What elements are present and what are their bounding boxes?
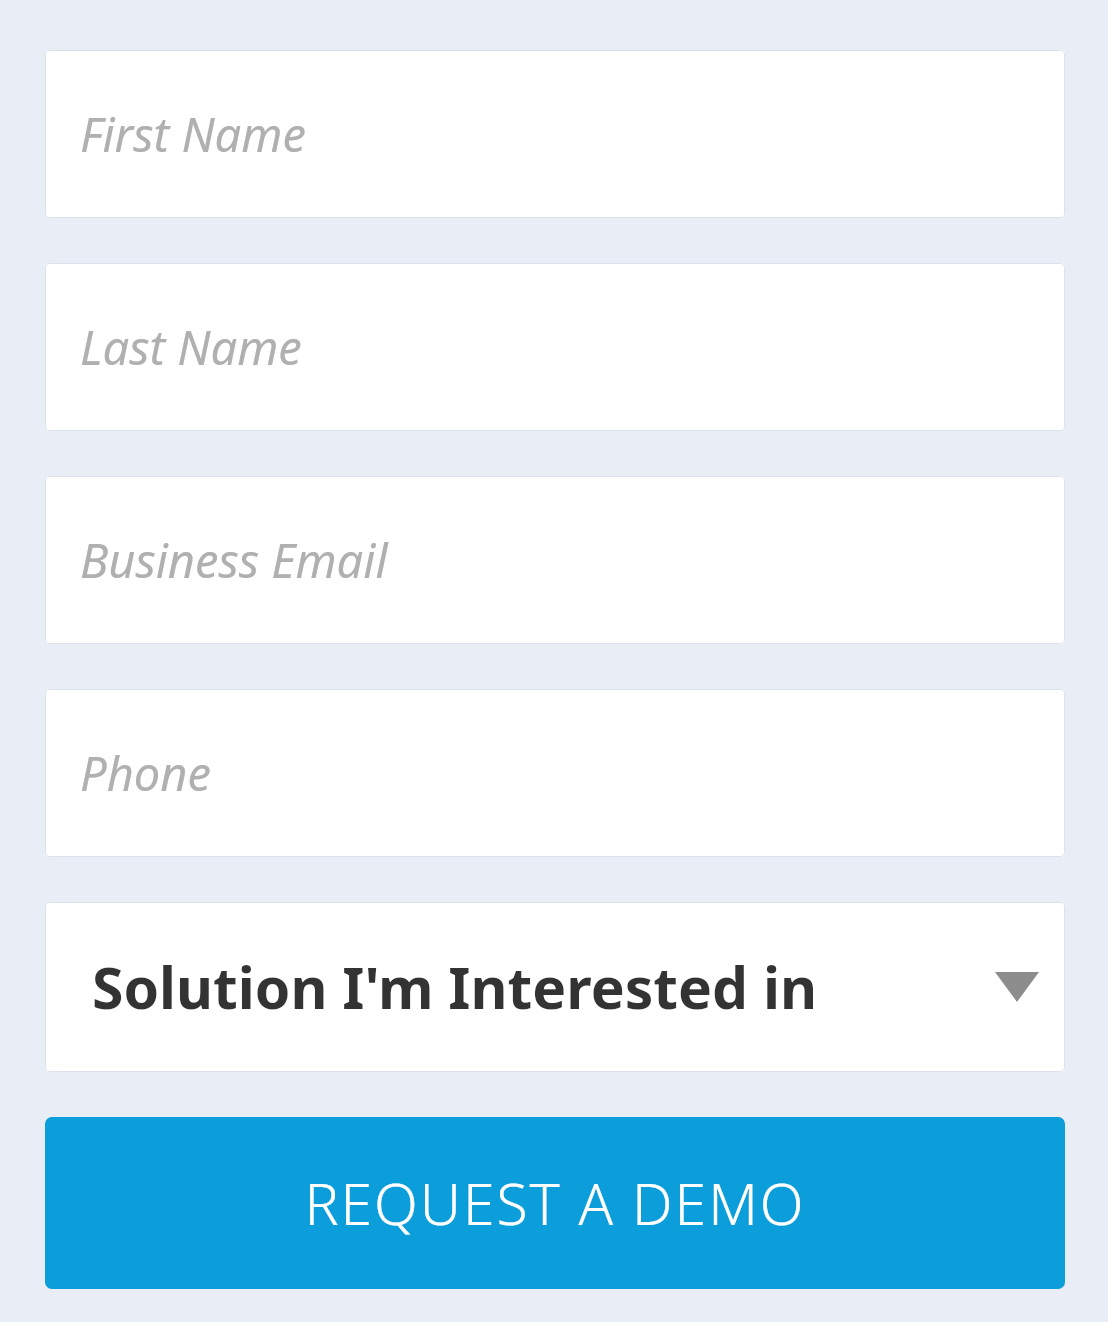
other: Open dropdown — [995, 972, 1039, 1002]
button[interactable]: First Name — [45, 50, 1065, 218]
staticText: First Name — [80, 102, 306, 166]
staticText: Last Name — [80, 315, 302, 379]
staticText: Business Email — [80, 528, 388, 592]
button[interactable]: Phone — [45, 689, 1065, 857]
button[interactable]: Business Email — [45, 476, 1065, 644]
staticText: Solution I'm Interested in — [92, 948, 818, 1026]
button[interactable]: Solution I'm Interested in — [45, 902, 1065, 1072]
button[interactable]: REQUEST A DEMO — [45, 1117, 1065, 1289]
button[interactable]: Last Name — [45, 263, 1065, 431]
staticText: Phone — [80, 741, 211, 805]
staticText: REQUEST A DEMO — [304, 1164, 806, 1242]
